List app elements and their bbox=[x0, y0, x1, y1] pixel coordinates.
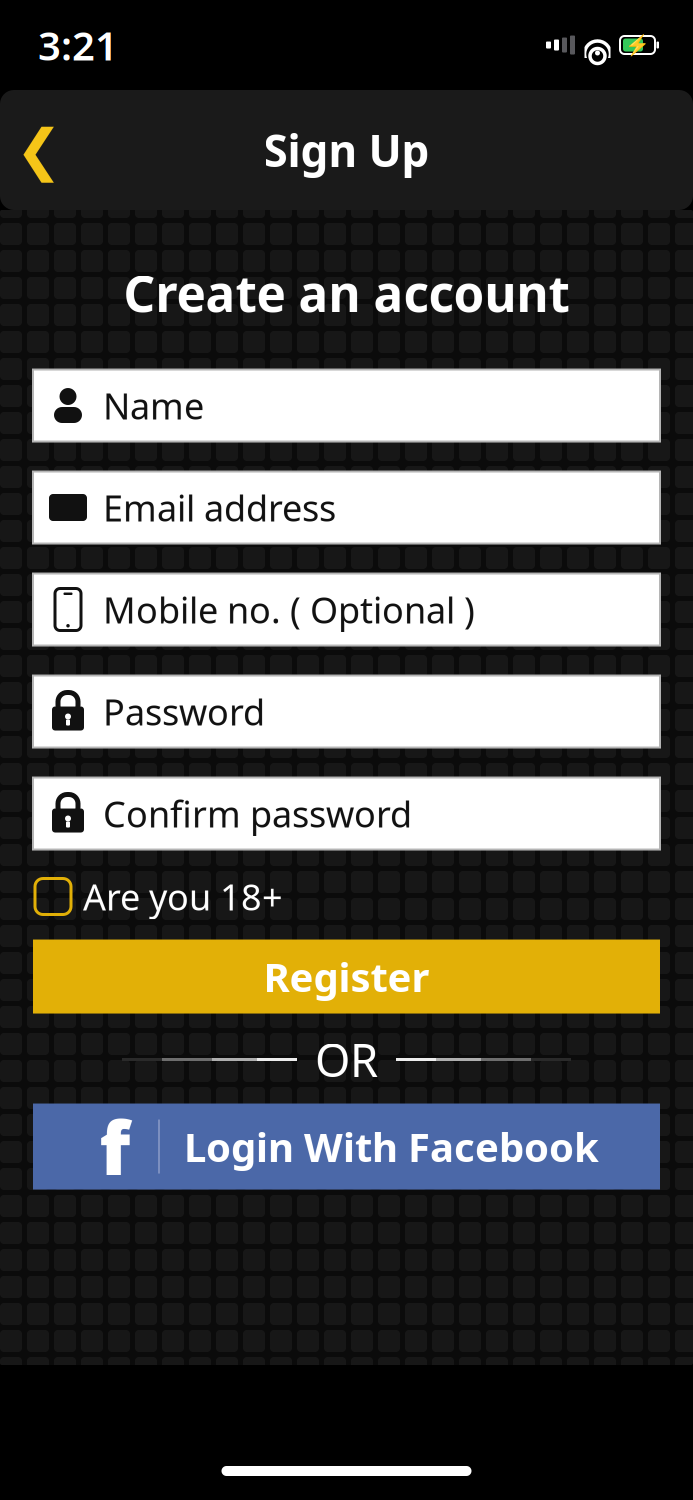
button[interactable]: Mobile no. ( Optional ) bbox=[33, 573, 660, 645]
button[interactable]: Are you 18+ bbox=[35, 871, 658, 921]
staticText: OR bbox=[315, 1029, 378, 1090]
staticText: ⚡ bbox=[625, 34, 650, 56]
staticText: Password bbox=[103, 688, 265, 735]
staticText: Sign Up bbox=[263, 121, 429, 179]
button[interactable]: Name bbox=[33, 369, 660, 441]
button[interactable]: ✉ bbox=[33, 471, 660, 543]
button[interactable]: Password bbox=[33, 675, 660, 747]
staticText: ❮ bbox=[15, 118, 62, 182]
button[interactable]: Back bbox=[0, 100, 78, 200]
staticText: Create an account bbox=[123, 260, 569, 325]
staticText: Are you 18+ bbox=[83, 873, 283, 920]
button[interactable]: Register bbox=[33, 939, 660, 1013]
staticText: f bbox=[99, 1097, 130, 1196]
staticText: Mobile no. ( Optional ) bbox=[103, 586, 475, 633]
staticText: Login With Facebook bbox=[184, 1120, 599, 1173]
button[interactable]: Confirm password bbox=[33, 777, 660, 849]
staticText: Name bbox=[103, 382, 204, 429]
button[interactable]: f bbox=[33, 1103, 660, 1189]
staticText: Email address bbox=[103, 484, 336, 531]
staticText: Confirm password bbox=[103, 790, 412, 837]
staticText: Register bbox=[263, 950, 429, 1003]
staticText: 3:21 bbox=[38, 18, 118, 71]
staticText: ✉ bbox=[51, 485, 85, 530]
